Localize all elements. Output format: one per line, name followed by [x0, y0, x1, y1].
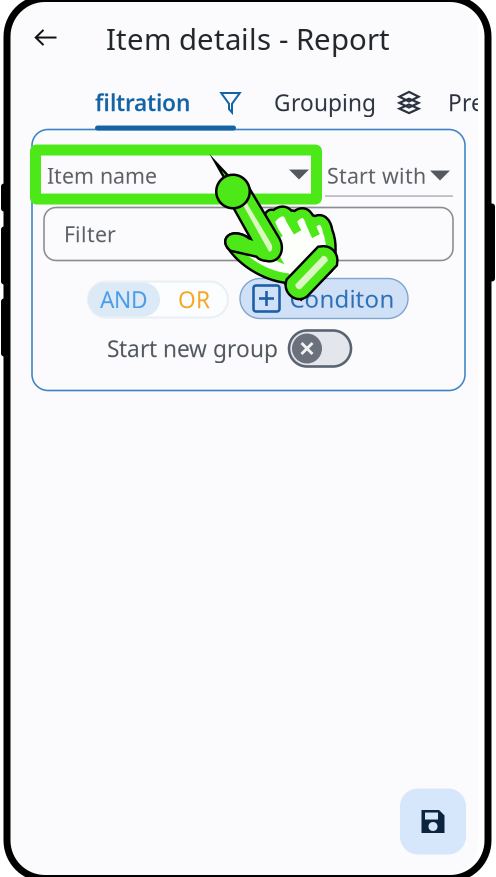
button[interactable]: Save: [400, 788, 466, 854]
staticText: Start with: [327, 161, 426, 190]
button[interactable]: Item name: [45, 155, 316, 197]
button[interactable]: Pre: [438, 79, 494, 125]
staticText: AND: [100, 284, 148, 314]
staticText: Pre: [448, 87, 484, 117]
staticText: OR: [178, 284, 210, 314]
staticText: Item name: [47, 161, 157, 190]
staticText: Conditon: [289, 283, 394, 314]
button[interactable]: OR: [160, 282, 228, 316]
button[interactable]: Start with: [325, 155, 453, 197]
button[interactable]: Start new group: [289, 330, 351, 366]
staticText: Start new group: [107, 333, 278, 363]
staticText: filtration: [95, 87, 190, 117]
staticText: Item details - Report: [106, 19, 390, 58]
button[interactable]: Back: [23, 14, 69, 60]
button[interactable]: Grouping: [264, 79, 430, 125]
button[interactable]: Filter: [44, 207, 453, 260]
staticText: Grouping: [274, 87, 376, 117]
button[interactable]: filtration: [85, 79, 251, 125]
staticText: Filter: [64, 220, 116, 248]
button[interactable]: AND: [88, 282, 160, 316]
button[interactable]: Conditon: [240, 278, 408, 318]
